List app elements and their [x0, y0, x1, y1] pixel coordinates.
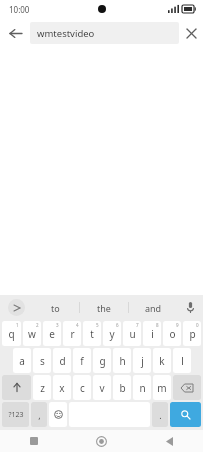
button[interactable]: Backspace: [173, 375, 201, 400]
button[interactable]: Clear: [179, 18, 203, 48]
button[interactable]: d: [53, 348, 71, 373]
staticText: q: [8, 327, 15, 341]
staticText: n: [139, 381, 146, 395]
button[interactable]: r: [63, 321, 81, 346]
staticText: ?123: [8, 410, 24, 420]
staticText: u: [129, 327, 136, 341]
button[interactable]: p: [183, 321, 201, 346]
button[interactable]: y: [103, 321, 121, 346]
button[interactable]: g: [93, 348, 111, 373]
button[interactable]: Recents: [0, 430, 67, 452]
button[interactable]: s: [33, 348, 51, 373]
button[interactable]: ,: [31, 402, 47, 427]
staticText: t: [90, 327, 94, 341]
staticText: 9: [176, 322, 179, 328]
staticText: d: [59, 354, 66, 368]
staticText: m: [157, 381, 167, 395]
staticText: 1: [16, 322, 19, 328]
button[interactable]: Search: [170, 402, 201, 427]
button[interactable]: t: [83, 321, 101, 346]
staticText: ,: [38, 409, 41, 421]
staticText: 8: [156, 322, 159, 328]
button[interactable]: m: [153, 375, 171, 400]
button[interactable]: j: [133, 348, 151, 373]
button[interactable]: Voice input: [177, 295, 203, 320]
button[interactable]: i: [143, 321, 161, 346]
staticText: l: [181, 354, 184, 368]
button[interactable]: the: [80, 295, 128, 320]
staticText: b: [119, 381, 126, 395]
button[interactable]: l: [173, 348, 191, 373]
staticText: to: [51, 302, 60, 314]
staticText: s: [40, 354, 45, 368]
button[interactable]: and: [129, 295, 177, 320]
staticText: .: [159, 409, 162, 421]
button[interactable]: More suggestions: [0, 295, 32, 320]
button[interactable]: q: [2, 321, 21, 346]
button[interactable]: to: [32, 295, 79, 320]
staticText: c: [80, 381, 85, 395]
button[interactable]: h: [113, 348, 131, 373]
staticText: r: [70, 327, 75, 341]
button[interactable]: o: [163, 321, 181, 346]
staticText: 0: [196, 322, 199, 328]
button[interactable]: Back: [135, 430, 203, 452]
button[interactable]: Back: [0, 18, 30, 48]
staticText: o: [169, 327, 176, 341]
button[interactable]: c: [73, 375, 91, 400]
staticText: v: [99, 381, 105, 395]
button[interactable]: w: [23, 321, 41, 346]
staticText: k: [159, 354, 165, 368]
button[interactable]: k: [153, 348, 171, 373]
staticText: 7: [136, 322, 139, 328]
button[interactable]: z: [33, 375, 51, 400]
staticText: a: [19, 354, 25, 368]
button[interactable]: v: [93, 375, 111, 400]
staticText: 2: [36, 322, 39, 328]
staticText: 5: [96, 322, 99, 328]
button[interactable]: Emoji: [49, 402, 67, 427]
button[interactable]: a: [13, 348, 31, 373]
staticText: 3: [56, 322, 59, 328]
button[interactable]: u: [123, 321, 141, 346]
staticText: and: [145, 302, 162, 314]
staticText: wmtestvideo: [37, 27, 95, 40]
button[interactable]: Home: [67, 430, 135, 452]
staticText: x: [59, 381, 65, 395]
button[interactable]: e: [43, 321, 61, 346]
staticText: 10:00: [9, 4, 30, 15]
staticText: z: [40, 381, 45, 395]
staticText: 6: [116, 322, 119, 328]
button[interactable]: n: [133, 375, 151, 400]
staticText: y: [109, 327, 115, 341]
staticText: 4: [76, 322, 79, 328]
staticText: f: [80, 354, 84, 368]
button[interactable]: ?123: [2, 402, 29, 427]
staticText: i: [151, 327, 154, 341]
staticText: e: [49, 327, 55, 341]
staticText: p: [189, 327, 196, 341]
button[interactable]: b: [113, 375, 131, 400]
button[interactable]: x: [53, 375, 71, 400]
staticText: h: [119, 354, 126, 368]
button[interactable]: wmtestvideo: [30, 22, 179, 44]
staticText: the: [97, 302, 111, 314]
button[interactable]: Shift: [2, 375, 31, 400]
staticText: j: [141, 354, 144, 368]
staticText: g: [99, 354, 106, 368]
button[interactable]: f: [73, 348, 91, 373]
button[interactable]: .: [152, 402, 168, 427]
staticText: w: [28, 327, 36, 341]
